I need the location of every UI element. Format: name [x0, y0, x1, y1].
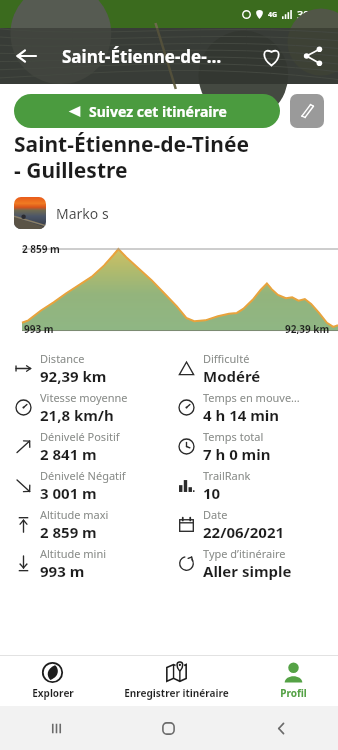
staticText: Aller simple	[203, 561, 292, 581]
button[interactable]: Type d’itinéraire	[169, 544, 332, 583]
staticText: 7 h 0 min	[203, 444, 271, 464]
button[interactable]: Vitesse moyenne	[6, 388, 169, 427]
button[interactable]: Enregistrer itinéraire	[105, 662, 248, 700]
staticText: Explorer	[32, 686, 74, 700]
button[interactable]: Explorer	[0, 662, 105, 700]
staticText: Marko s	[56, 204, 109, 223]
staticText: Saint-Étienne-de-Tinée - Guillestre	[14, 130, 324, 185]
button[interactable]: Favorite	[250, 35, 292, 77]
staticText: 993 m	[24, 322, 54, 336]
staticText: 39%	[297, 7, 319, 22]
staticText: Profil	[280, 686, 307, 700]
staticText: Dénivelé Négatif	[40, 468, 126, 483]
staticText: 92,39 km	[285, 322, 330, 336]
staticText: Date	[203, 507, 228, 522]
staticText: Suivez cet itinéraire	[89, 102, 227, 121]
button[interactable]: Suivez cet itinéraire	[14, 94, 280, 128]
staticText: Type d’itinéraire	[203, 546, 286, 561]
staticText: TrailRank	[203, 468, 251, 483]
button[interactable]: Back	[225, 706, 338, 750]
staticText: Difficulté	[203, 351, 250, 366]
staticText: Distance	[40, 351, 85, 366]
staticText: 3 001 m	[40, 483, 97, 503]
staticText: 4 h 14 min	[203, 405, 280, 425]
staticText: 993 m	[40, 561, 85, 581]
button[interactable]: Dénivelé Positif	[6, 427, 169, 466]
button[interactable]: Distance	[6, 349, 169, 388]
staticText: Dénivelé Positif	[40, 429, 120, 444]
staticText: 2 841 m	[40, 444, 97, 464]
staticText: 2 859 m	[40, 522, 97, 542]
staticText: Vitesse moyenne	[40, 390, 128, 405]
button[interactable]: Recents	[0, 706, 112, 750]
staticText: Temps total	[203, 429, 264, 444]
button[interactable]: TrailRank	[169, 466, 332, 505]
button[interactable]: Difficulté	[169, 349, 332, 388]
staticText: Enregistrer itinéraire	[124, 686, 229, 700]
staticText: 4G	[268, 10, 278, 20]
staticText: Temps en mouve…	[203, 390, 300, 405]
button[interactable]: Profil	[248, 662, 338, 700]
button[interactable]: Back	[6, 36, 46, 76]
button[interactable]: Home	[112, 706, 225, 750]
button[interactable]: Dénivelé Négatif	[6, 466, 169, 505]
button[interactable]: Date	[169, 505, 332, 544]
staticText: Saint-Étienne-de-…	[62, 45, 222, 68]
staticText: 21,8 km/h	[40, 405, 114, 425]
button[interactable]: Altitude mini	[6, 544, 169, 583]
button[interactable]: Altitude maxi	[6, 505, 169, 544]
staticText: Altitude mini	[40, 546, 107, 561]
staticText: Altitude maxi	[40, 507, 109, 522]
staticText: 22/06/2021	[203, 522, 285, 542]
button[interactable]: Temps en mouve…	[169, 388, 332, 427]
button[interactable]: Edit	[290, 94, 324, 128]
button[interactable]: Marko s	[14, 197, 338, 229]
staticText: 10	[203, 483, 221, 503]
staticText: 92,39 km	[40, 366, 107, 386]
button[interactable]: Temps total	[169, 427, 332, 466]
button[interactable]: Share	[292, 35, 334, 77]
staticText: Modéré	[203, 366, 261, 386]
staticText: 2 859 m	[22, 242, 60, 256]
